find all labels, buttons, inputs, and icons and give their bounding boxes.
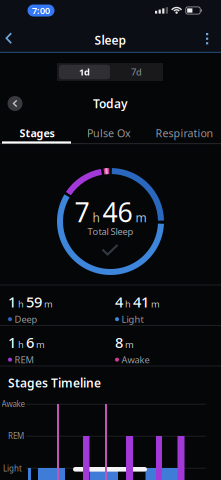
staticText: 4	[115, 292, 123, 311]
button[interactable]: Stages	[0, 123, 73, 143]
staticText: Light	[3, 463, 22, 474]
staticText: REM	[14, 353, 33, 366]
staticText: 7	[74, 194, 89, 230]
staticText: REM	[8, 431, 24, 441]
staticText: h	[92, 210, 99, 226]
staticText: 1	[8, 332, 16, 352]
staticText: h	[18, 338, 24, 350]
staticText: Awake	[1, 399, 25, 409]
staticText: 8	[115, 332, 123, 352]
button[interactable]	[7, 96, 22, 111]
staticText: 41	[133, 292, 149, 311]
staticText: Stages Timeline	[8, 375, 101, 391]
staticText: m	[151, 298, 160, 310]
staticText: m	[125, 338, 134, 350]
staticText: Stages	[19, 126, 54, 140]
staticText: 7:00	[32, 4, 50, 17]
button[interactable]: 7d	[111, 65, 162, 79]
staticText: 6	[26, 332, 34, 352]
button[interactable]: Respiration	[148, 123, 221, 143]
staticText: Respiration	[155, 126, 213, 140]
staticText: 59	[26, 292, 42, 311]
staticText: 7d	[131, 66, 142, 78]
staticText: m	[44, 298, 53, 310]
button[interactable]	[198, 32, 216, 46]
staticText: Today	[93, 95, 128, 111]
button[interactable]	[0, 29, 18, 47]
staticText: Pulse Ox	[87, 126, 131, 140]
staticText: h	[125, 298, 131, 310]
staticText: h	[18, 298, 24, 310]
staticText: m	[36, 338, 45, 350]
staticText: 1	[8, 292, 16, 311]
button[interactable]: 1d	[59, 65, 110, 79]
button[interactable]: Pulse Ox	[72, 123, 145, 143]
staticText: Light	[121, 313, 143, 325]
staticText: 1d	[79, 66, 90, 78]
staticText: Awake	[121, 353, 149, 366]
staticText: m	[135, 210, 146, 226]
staticText: 46	[102, 194, 132, 230]
staticText: Total Sleep	[87, 225, 133, 238]
staticText: Sleep	[94, 32, 126, 48]
staticText: Deep	[14, 313, 37, 325]
